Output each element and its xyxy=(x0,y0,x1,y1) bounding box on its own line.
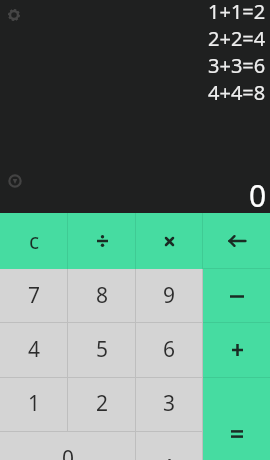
staticText: 0 xyxy=(249,175,267,216)
button[interactable]: 0 xyxy=(0,431,135,460)
staticText: 2 xyxy=(96,389,109,417)
staticText: 7 xyxy=(28,281,41,309)
button[interactable]: Multiply xyxy=(135,213,203,269)
button[interactable]: 2 xyxy=(68,377,136,431)
button[interactable]: Minus xyxy=(203,269,270,323)
button[interactable]: 3 xyxy=(135,377,203,431)
button[interactable]: c xyxy=(0,213,68,269)
staticText: 3 xyxy=(163,389,176,417)
staticText: 9 xyxy=(163,281,176,309)
staticText: 4+4=8 xyxy=(208,79,266,106)
staticText: 8 xyxy=(96,281,109,309)
staticText: 6 xyxy=(163,335,176,363)
staticText: 3+3=6 xyxy=(208,52,266,79)
button[interactable]: 8 xyxy=(68,269,136,323)
button[interactable]: 4 xyxy=(0,323,68,377)
button[interactable]: 5 xyxy=(68,323,136,377)
button[interactable]: Divide xyxy=(68,213,136,269)
button[interactable]: History xyxy=(4,170,26,192)
button[interactable]: 9 xyxy=(135,269,203,323)
button[interactable]: Plus xyxy=(203,323,270,377)
button[interactable]: 6 xyxy=(135,323,203,377)
button[interactable]: Settings xyxy=(3,4,25,26)
button[interactable]: 1 xyxy=(0,377,68,431)
button[interactable]: 7 xyxy=(0,269,68,323)
staticText: 5 xyxy=(96,335,109,363)
button[interactable]: Equals xyxy=(203,377,270,460)
staticText: 2+2=4 xyxy=(208,25,266,52)
button[interactable]: Backspace xyxy=(203,213,270,269)
staticText: 1+1=2 xyxy=(208,0,266,25)
button[interactable]: Decimal point xyxy=(135,431,203,460)
staticText: 1 xyxy=(28,389,41,417)
staticText: c xyxy=(29,227,40,255)
staticText: 4 xyxy=(28,335,41,363)
staticText: 0 xyxy=(62,444,75,460)
